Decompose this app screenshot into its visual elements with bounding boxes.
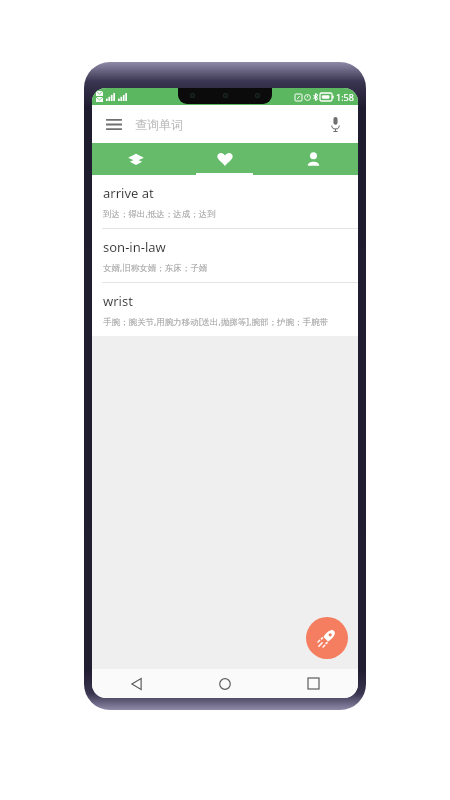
button[interactable]: arrive at <box>92 175 358 228</box>
button[interactable]: wrist <box>92 283 358 336</box>
button[interactable]: Home <box>180 669 269 698</box>
button[interactable]: 查询单词 <box>135 117 323 132</box>
staticText: wrist <box>103 292 133 310</box>
staticText: 手腕；腕关节,用腕力移动[送出,抛掷等],腕部；护腕；手腕带 <box>103 316 328 328</box>
button[interactable]: Recents <box>269 669 358 698</box>
button[interactable]: Back <box>92 669 180 698</box>
staticText: 到达；得出,抵达；达成；达到 <box>103 208 216 220</box>
staticText: 查询单词 <box>135 117 183 132</box>
button[interactable]: son-in-law <box>92 229 358 282</box>
staticText: arrive at <box>103 184 154 202</box>
staticText: son-in-law <box>103 238 166 256</box>
button[interactable]: Voice search <box>323 112 347 136</box>
button[interactable]: Menu <box>103 113 125 135</box>
staticText: 女婿,旧称女婿；东床；子婿 <box>103 262 208 274</box>
button[interactable]: Favorites <box>180 143 269 175</box>
staticText: 1:58 <box>336 91 354 103</box>
button[interactable]: Profile <box>269 143 358 175</box>
button[interactable]: Study <box>92 143 180 175</box>
button[interactable]: Launch review <box>306 617 348 659</box>
